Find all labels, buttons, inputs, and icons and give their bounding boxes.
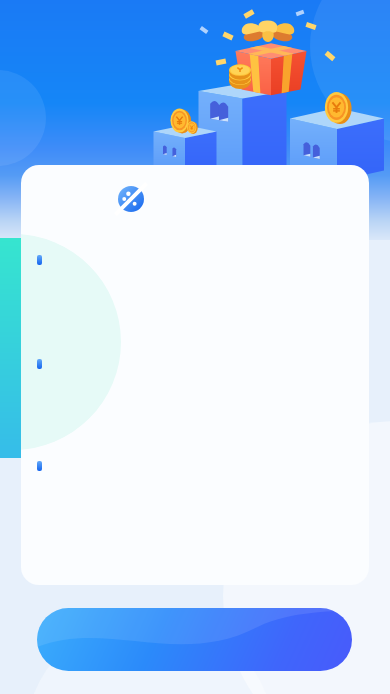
other: Discount	[118, 186, 144, 212]
button[interactable]: Continue	[37, 608, 352, 671]
button[interactable]: Discount	[21, 165, 369, 585]
